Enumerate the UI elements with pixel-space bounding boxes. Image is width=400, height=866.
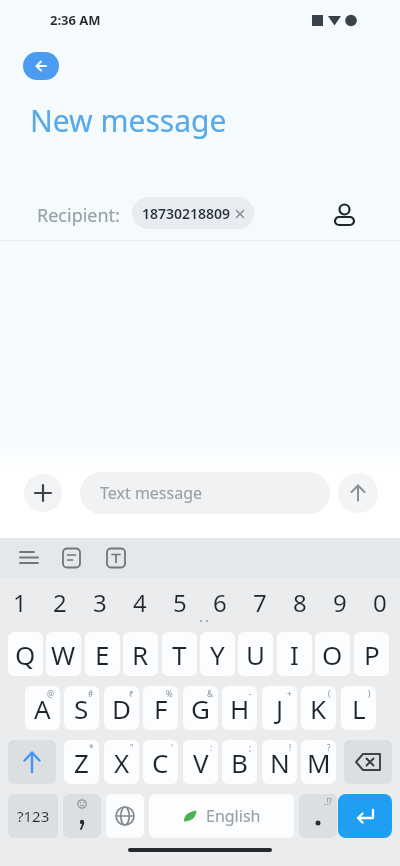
button[interactable]: N [262, 740, 297, 784]
staticText: F [154, 691, 168, 726]
button[interactable]: W [46, 632, 81, 676]
staticText: Q [15, 637, 36, 672]
staticText: 0 [373, 586, 387, 619]
button[interactable]: 1 [0, 584, 40, 620]
button[interactable] [105, 547, 127, 569]
staticText: 5 [173, 586, 187, 619]
button[interactable]: .!? [299, 794, 337, 838]
button[interactable]: Z [64, 740, 99, 784]
button[interactable]: ?123 [8, 794, 58, 838]
staticText: 6 [213, 586, 227, 619]
button[interactable]: 0 [360, 584, 400, 620]
button[interactable]: R [123, 632, 158, 676]
staticText: & [207, 688, 213, 699]
button[interactable]: 9 [320, 584, 360, 620]
staticText: New message [30, 100, 227, 141]
button[interactable]: X [104, 740, 139, 784]
staticText: * [89, 742, 94, 753]
staticText: X [114, 745, 130, 780]
button[interactable]: Text message [80, 472, 330, 514]
staticText: K [310, 691, 327, 726]
staticText: ? [327, 742, 331, 753]
button[interactable] [24, 474, 62, 512]
button[interactable]: 5 [160, 584, 200, 620]
button[interactable]: 3 [80, 584, 120, 620]
staticText: " [130, 742, 134, 753]
staticText: Recipient: [37, 203, 120, 228]
button[interactable] [61, 547, 83, 569]
button[interactable]: V [183, 740, 218, 784]
button[interactable]: 2 [40, 584, 80, 620]
staticText: 9 [333, 586, 347, 619]
button[interactable]: C [143, 740, 178, 784]
staticText: G [191, 691, 210, 726]
staticText: % [166, 688, 173, 699]
button[interactable] [344, 740, 392, 784]
staticText: 2:36 AM [50, 11, 101, 29]
button[interactable]: G [183, 686, 218, 730]
button[interactable]: D [104, 686, 139, 730]
button[interactable] [338, 794, 392, 838]
staticText: Y [210, 637, 225, 672]
staticText: M [307, 745, 331, 780]
button[interactable]: 4 [120, 584, 160, 620]
button[interactable]: E [85, 632, 120, 676]
button[interactable] [8, 740, 56, 784]
button[interactable] [18, 547, 40, 569]
staticText: D [112, 691, 131, 726]
staticText: O [322, 637, 343, 672]
button[interactable]: K [301, 686, 336, 730]
staticText: L [352, 691, 366, 726]
staticText: Text message [100, 482, 203, 504]
staticText: ' [171, 742, 173, 753]
button[interactable]: T [162, 632, 197, 676]
button[interactable] [23, 52, 59, 80]
button[interactable]: 7 [240, 584, 280, 620]
staticText: # [88, 688, 94, 699]
staticText: T [172, 637, 187, 672]
button[interactable]: 6 [200, 584, 240, 620]
staticText: ?123 [17, 806, 50, 826]
button[interactable] [338, 473, 378, 513]
staticText: 8 [293, 586, 307, 619]
staticText: R [132, 637, 149, 672]
staticText: ; [249, 742, 252, 753]
button[interactable]: 8 [280, 584, 320, 620]
button[interactable]: U [238, 632, 273, 676]
button[interactable]: I [277, 632, 312, 676]
button[interactable]: S [64, 686, 99, 730]
staticText: - [249, 688, 252, 699]
staticText: B [231, 745, 248, 780]
staticText: C [152, 745, 169, 780]
button[interactable]: F [143, 686, 178, 730]
staticText: V [193, 745, 209, 780]
button[interactable] [63, 794, 101, 838]
staticText: 1 [13, 586, 27, 619]
staticText: ₹ [129, 688, 134, 699]
staticText: .!? [324, 796, 332, 807]
button[interactable]: A [25, 686, 60, 730]
staticText: 7 [253, 586, 267, 619]
button[interactable]: Q [8, 632, 43, 676]
button[interactable] [106, 794, 144, 838]
staticText: ! [289, 742, 292, 753]
button[interactable]: B [222, 740, 257, 784]
staticText: U [246, 637, 266, 672]
button[interactable]: H [222, 686, 257, 730]
staticText: P [364, 637, 380, 672]
button[interactable]: L [341, 686, 376, 730]
button[interactable]: O [315, 632, 350, 676]
staticText: W [51, 637, 76, 672]
button[interactable]: M [301, 740, 336, 784]
staticText: 2 [53, 586, 67, 619]
button[interactable]: 18730218809 [132, 197, 254, 229]
button[interactable]: J [262, 686, 297, 730]
staticText: 4 [133, 586, 147, 619]
button[interactable]: English [149, 794, 294, 838]
staticText: A [34, 691, 51, 726]
button[interactable]: P [354, 632, 389, 676]
button[interactable]: Y [200, 632, 235, 676]
staticText: : [210, 742, 213, 753]
staticText: 3 [93, 586, 107, 619]
button[interactable] [332, 200, 358, 226]
